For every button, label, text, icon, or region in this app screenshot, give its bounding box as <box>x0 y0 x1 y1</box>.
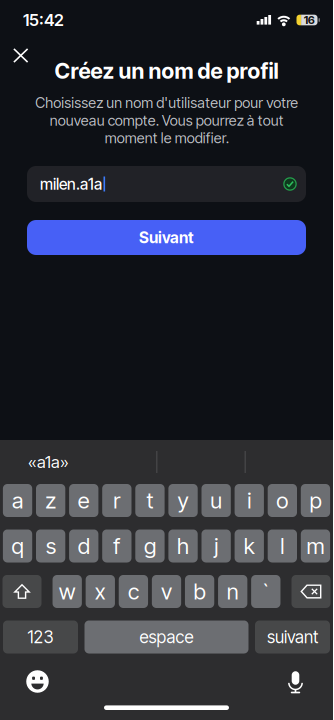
staticText: ` <box>261 578 270 605</box>
button[interactable]: l <box>268 529 297 562</box>
staticText: h <box>177 533 189 559</box>
staticText: p <box>309 487 321 514</box>
button[interactable]: d <box>69 529 98 562</box>
button[interactable]: i <box>235 484 264 517</box>
staticText: a <box>12 487 23 514</box>
staticText: w <box>59 578 76 605</box>
staticText: j <box>214 533 218 559</box>
button[interactable]: c <box>119 575 148 608</box>
staticText: q <box>12 533 24 559</box>
staticText: t <box>146 487 153 514</box>
staticText: Choisissez un nom d'utilisateur pour vot… <box>35 94 298 147</box>
button[interactable]: ` <box>251 575 280 608</box>
button[interactable]: p <box>301 484 330 517</box>
staticText: c <box>128 578 139 605</box>
staticText: b <box>194 578 206 605</box>
button[interactable]: Suivant <box>27 220 306 255</box>
button[interactable]: r <box>102 484 131 517</box>
staticText: z <box>45 487 56 514</box>
button[interactable]: Fermer <box>4 39 37 72</box>
button[interactable]: e <box>69 484 98 517</box>
button[interactable]: s <box>36 529 65 562</box>
button[interactable]: g <box>135 529 165 562</box>
staticText: Créez un nom de profil <box>54 58 278 84</box>
staticText: r <box>113 487 120 514</box>
button[interactable]: m <box>301 529 330 562</box>
button[interactable]: v <box>152 575 181 608</box>
staticText: k <box>244 533 255 559</box>
button[interactable]: u <box>201 484 231 517</box>
button[interactable]: y <box>168 484 198 517</box>
staticText: f <box>113 533 120 559</box>
staticText: g <box>144 533 156 559</box>
staticText: s <box>46 533 56 559</box>
button[interactable]: a <box>3 484 32 517</box>
staticText: y <box>178 487 189 514</box>
button[interactable]: Majuscule <box>2 575 41 608</box>
staticText: «a1a» <box>28 452 69 472</box>
button[interactable]: f <box>102 529 131 562</box>
staticText: suivant <box>267 627 318 647</box>
button[interactable]: n <box>218 575 247 608</box>
button[interactable]: w <box>53 575 82 608</box>
button[interactable]: q <box>3 529 32 562</box>
staticText: o <box>276 487 288 514</box>
staticText: l <box>280 533 284 559</box>
button[interactable]: Supprimer <box>291 575 330 608</box>
staticText: x <box>95 578 106 605</box>
staticText: Suivant <box>139 228 194 247</box>
staticText: v <box>161 578 172 605</box>
staticText: i <box>247 487 251 514</box>
button[interactable]: espace <box>84 620 248 653</box>
button[interactable]: j <box>201 529 231 562</box>
button[interactable]: Dictée <box>284 670 307 693</box>
button[interactable]: Emoji <box>26 670 49 693</box>
button[interactable]: z <box>36 484 65 517</box>
staticText: n <box>227 578 239 605</box>
button[interactable]: t <box>135 484 165 517</box>
button[interactable]: k <box>235 529 264 562</box>
staticText: u <box>210 487 222 514</box>
staticText: m <box>306 533 324 559</box>
staticText: 15:42 <box>23 10 64 30</box>
staticText: e <box>78 487 90 514</box>
button[interactable]: h <box>168 529 198 562</box>
staticText: milen.a1a <box>40 175 102 193</box>
staticText: espace <box>139 627 193 647</box>
button[interactable]: b <box>185 575 214 608</box>
button[interactable]: x <box>86 575 115 608</box>
button[interactable]: o <box>268 484 297 517</box>
staticText: 123 <box>27 627 53 647</box>
button[interactable]: suivant <box>255 620 330 653</box>
button[interactable]: 123 <box>3 620 78 653</box>
staticText: 16 <box>304 13 315 27</box>
staticText: d <box>78 533 90 559</box>
